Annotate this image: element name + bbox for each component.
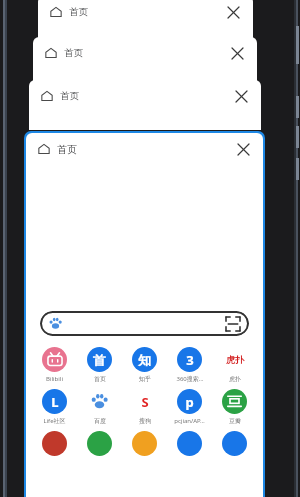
button[interactable] <box>122 431 167 456</box>
staticText: Life社区 <box>43 417 66 425</box>
button[interactable]: Bilibili <box>32 347 77 383</box>
staticText: L <box>51 393 59 411</box>
staticText: 360搜索… <box>176 375 204 383</box>
staticText: 首页 <box>69 6 88 18</box>
button[interactable] <box>212 431 257 456</box>
button[interactable]: Close tab <box>233 139 253 159</box>
button[interactable] <box>77 431 122 456</box>
button[interactable]: 首页 <box>29 80 261 130</box>
staticText: 知 <box>138 352 151 368</box>
button[interactable] <box>32 431 77 456</box>
button[interactable]: S <box>122 389 167 425</box>
button[interactable]: 首页 <box>33 37 257 81</box>
button[interactable]: L <box>32 389 77 425</box>
staticText: 豆瓣 <box>229 417 241 425</box>
staticText: 3 <box>186 351 194 369</box>
staticText: 搜狗 <box>139 417 151 425</box>
button[interactable]: Close tab <box>223 2 243 22</box>
button[interactable] <box>167 431 212 456</box>
button[interactable]: 虎扑 <box>212 347 257 383</box>
staticText: p <box>185 393 194 411</box>
staticText: 首页 <box>64 47 83 59</box>
staticText: 虎扑 <box>229 375 241 383</box>
button[interactable]: 知 <box>122 347 167 383</box>
staticText: Bilibili <box>46 375 63 383</box>
staticText: 首页 <box>57 143 77 156</box>
staticText: 虎扑 <box>226 354 244 365</box>
button[interactable]: 首页 <box>38 0 253 38</box>
staticText: S <box>141 393 149 411</box>
staticText: 首 <box>93 352 106 368</box>
staticText: pcjian/AP… <box>174 417 205 425</box>
button[interactable]: p <box>167 389 212 425</box>
other: Scan QR code <box>226 317 240 331</box>
staticText: 知乎 <box>139 375 151 383</box>
button[interactable]: 豆瓣 <box>212 389 257 425</box>
button[interactable]: 首 <box>77 347 122 383</box>
button[interactable]: 百度 <box>77 389 122 425</box>
button[interactable]: Close tab <box>227 43 247 63</box>
button[interactable]: 3 <box>167 347 212 383</box>
button[interactable]: Scan QR code <box>40 311 249 336</box>
staticText: 首页 <box>60 90 79 102</box>
staticText: 首页 <box>94 375 106 383</box>
staticText: 百度 <box>94 417 106 425</box>
button[interactable]: Close tab <box>231 86 251 106</box>
